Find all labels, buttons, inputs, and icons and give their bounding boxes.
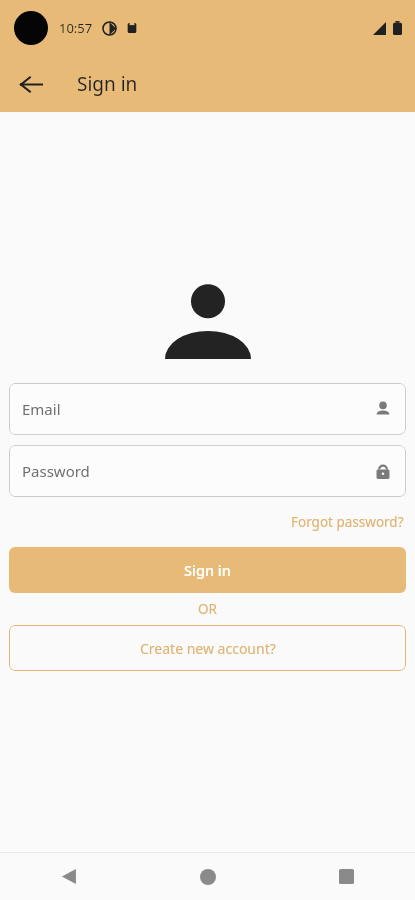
button[interactable]: Recent apps xyxy=(277,853,415,900)
staticText: Sign in xyxy=(77,71,138,97)
staticText: OR xyxy=(198,600,217,618)
staticText: Password xyxy=(22,461,374,481)
button[interactable]: Back xyxy=(0,853,139,900)
button[interactable]: Email account icon xyxy=(9,383,406,435)
staticText: Forgot password? xyxy=(291,513,404,531)
button[interactable]: Forgot password? xyxy=(289,510,406,534)
staticText: Sign in xyxy=(184,560,231,580)
button[interactable]: Create new account? xyxy=(9,625,406,671)
staticText: Create new account? xyxy=(140,639,276,658)
button[interactable]: Home xyxy=(139,853,277,900)
staticText: 10:57 xyxy=(59,19,93,37)
button[interactable]: Sign in xyxy=(9,547,406,593)
button[interactable]: Back xyxy=(10,63,52,105)
staticText: Email xyxy=(22,399,374,419)
button[interactable]: Password lock icon xyxy=(9,445,406,497)
